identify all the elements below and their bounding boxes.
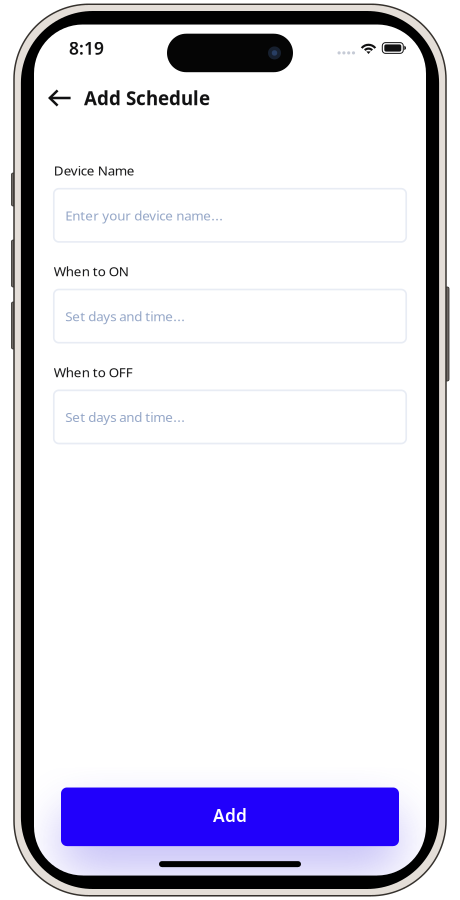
staticText: 8:19: [69, 36, 104, 59]
button[interactable]: Back: [34, 83, 84, 113]
staticText: Enter your device name...: [65, 206, 223, 224]
staticText: When to ON: [54, 262, 129, 280]
button[interactable]: Set days and time...: [54, 289, 406, 343]
button[interactable]: Add: [34, 787, 426, 846]
staticText: Add Schedule: [84, 86, 210, 110]
staticText: When to OFF: [54, 363, 133, 381]
staticText: Set days and time...: [65, 408, 185, 426]
button[interactable]: Set days and time...: [54, 390, 406, 443]
staticText: Device Name: [54, 161, 135, 179]
button[interactable]: Enter your device name...: [54, 189, 406, 242]
staticText: Add: [213, 804, 247, 827]
staticText: Set days and time...: [65, 307, 185, 325]
